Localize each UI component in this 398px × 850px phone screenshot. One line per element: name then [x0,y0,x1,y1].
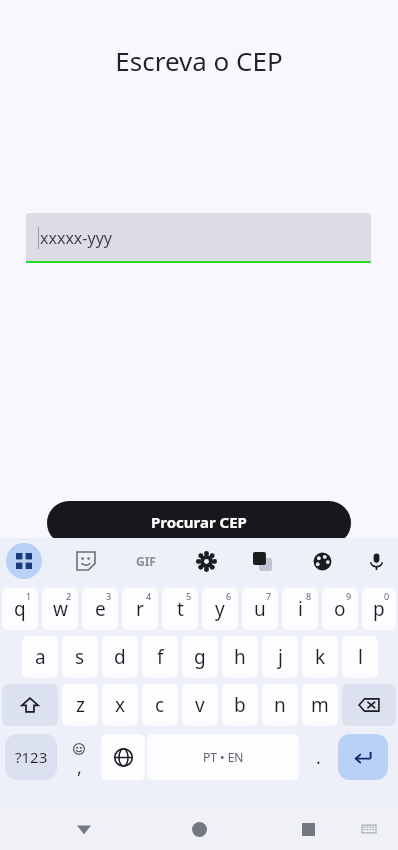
button[interactable]: Settings [186,541,226,581]
button[interactable]: Recent apps [294,815,322,843]
staticText: c [155,692,165,718]
staticText: b [234,692,246,718]
staticText: . [316,745,321,770]
button[interactable]: Voice input [356,541,396,581]
button[interactable]: Keyboard [358,818,380,840]
staticText: q [14,596,26,622]
staticText: w [53,596,68,622]
button[interactable]: Emoji and comma [60,734,98,780]
button[interactable]: o [322,588,358,630]
staticText: p [373,596,385,622]
staticText: 1 [26,590,32,602]
button[interactable]: w [42,588,78,630]
staticText: e [95,596,106,622]
staticText: Procurar CEP [151,512,247,532]
staticText: h [234,644,246,670]
button[interactable]: Stickers [66,541,106,581]
staticText: j [278,644,283,670]
button[interactable]: GIF [126,541,166,581]
staticText: xxxxx-yyy [40,227,112,249]
staticText: n [274,692,286,718]
button[interactable]: Change language [101,734,145,780]
button[interactable]: i [282,588,318,630]
button[interactable]: PT • EN [147,734,299,780]
button[interactable]: u [242,588,278,630]
staticText: d [114,644,126,670]
staticText: i [298,596,303,622]
staticText: t [177,596,184,622]
button[interactable]: g [182,636,218,678]
button[interactable]: l [342,636,378,678]
staticText: r [136,596,144,622]
button[interactable]: x [102,684,138,726]
staticText: l [358,644,363,670]
button[interactable]: d [102,636,138,678]
button[interactable]: j [262,636,298,678]
staticText: 6 [226,590,232,602]
staticText: 0 [384,590,390,602]
button[interactable]: y [202,588,238,630]
staticText: 9 [346,590,352,602]
button[interactable]: z [62,684,98,726]
button[interactable]: s [62,636,98,678]
staticText: , [77,755,82,780]
staticText: 2 [66,590,72,602]
button[interactable]: f [142,636,178,678]
staticText: Escreva o CEP [115,43,283,78]
button[interactable]: c [142,684,178,726]
staticText: g [194,644,206,670]
button[interactable]: Backspace [342,684,396,726]
staticText: z [76,692,85,718]
button[interactable]: Toolbar menu [6,543,42,579]
staticText: y [215,596,225,622]
staticText: k [315,644,326,670]
button[interactable]: Procurar CEP [47,501,351,545]
button[interactable]: ?123 [5,734,57,780]
button[interactable]: q [2,588,38,630]
staticText: s [75,644,85,670]
button[interactable]: v [182,684,218,726]
button[interactable]: t [162,588,198,630]
button[interactable]: Enter [338,734,388,780]
button[interactable]: b [222,684,258,726]
staticText: x [115,692,126,718]
button[interactable]: Theme [302,541,342,581]
staticText: m [311,692,329,718]
staticText: u [254,596,266,622]
staticText: 8 [306,590,312,602]
button[interactable]: Shift [2,684,58,726]
button[interactable]: Translate [242,541,282,581]
staticText: 3 [106,590,112,602]
staticText: v [195,692,205,718]
button[interactable]: k [302,636,338,678]
button[interactable]: m [302,684,338,726]
button[interactable]: h [222,636,258,678]
staticText: 5 [186,590,192,602]
staticText: 4 [146,590,152,602]
button[interactable]: a [22,636,58,678]
button[interactable]: xxxxx-yyy [26,213,371,263]
staticText: f [157,644,164,670]
staticText: ?123 [15,747,48,767]
button[interactable]: p [362,588,396,630]
button[interactable]: n [262,684,298,726]
button[interactable]: Home [185,815,213,843]
button[interactable]: e [82,588,118,630]
staticText: GIF [136,553,156,569]
button[interactable]: r [122,588,158,630]
staticText: 7 [266,590,272,602]
button[interactable]: . [301,734,335,780]
staticText: a [35,644,46,670]
button[interactable]: Back [70,815,98,843]
staticText: PT • EN [203,749,244,765]
staticText: o [334,596,346,622]
